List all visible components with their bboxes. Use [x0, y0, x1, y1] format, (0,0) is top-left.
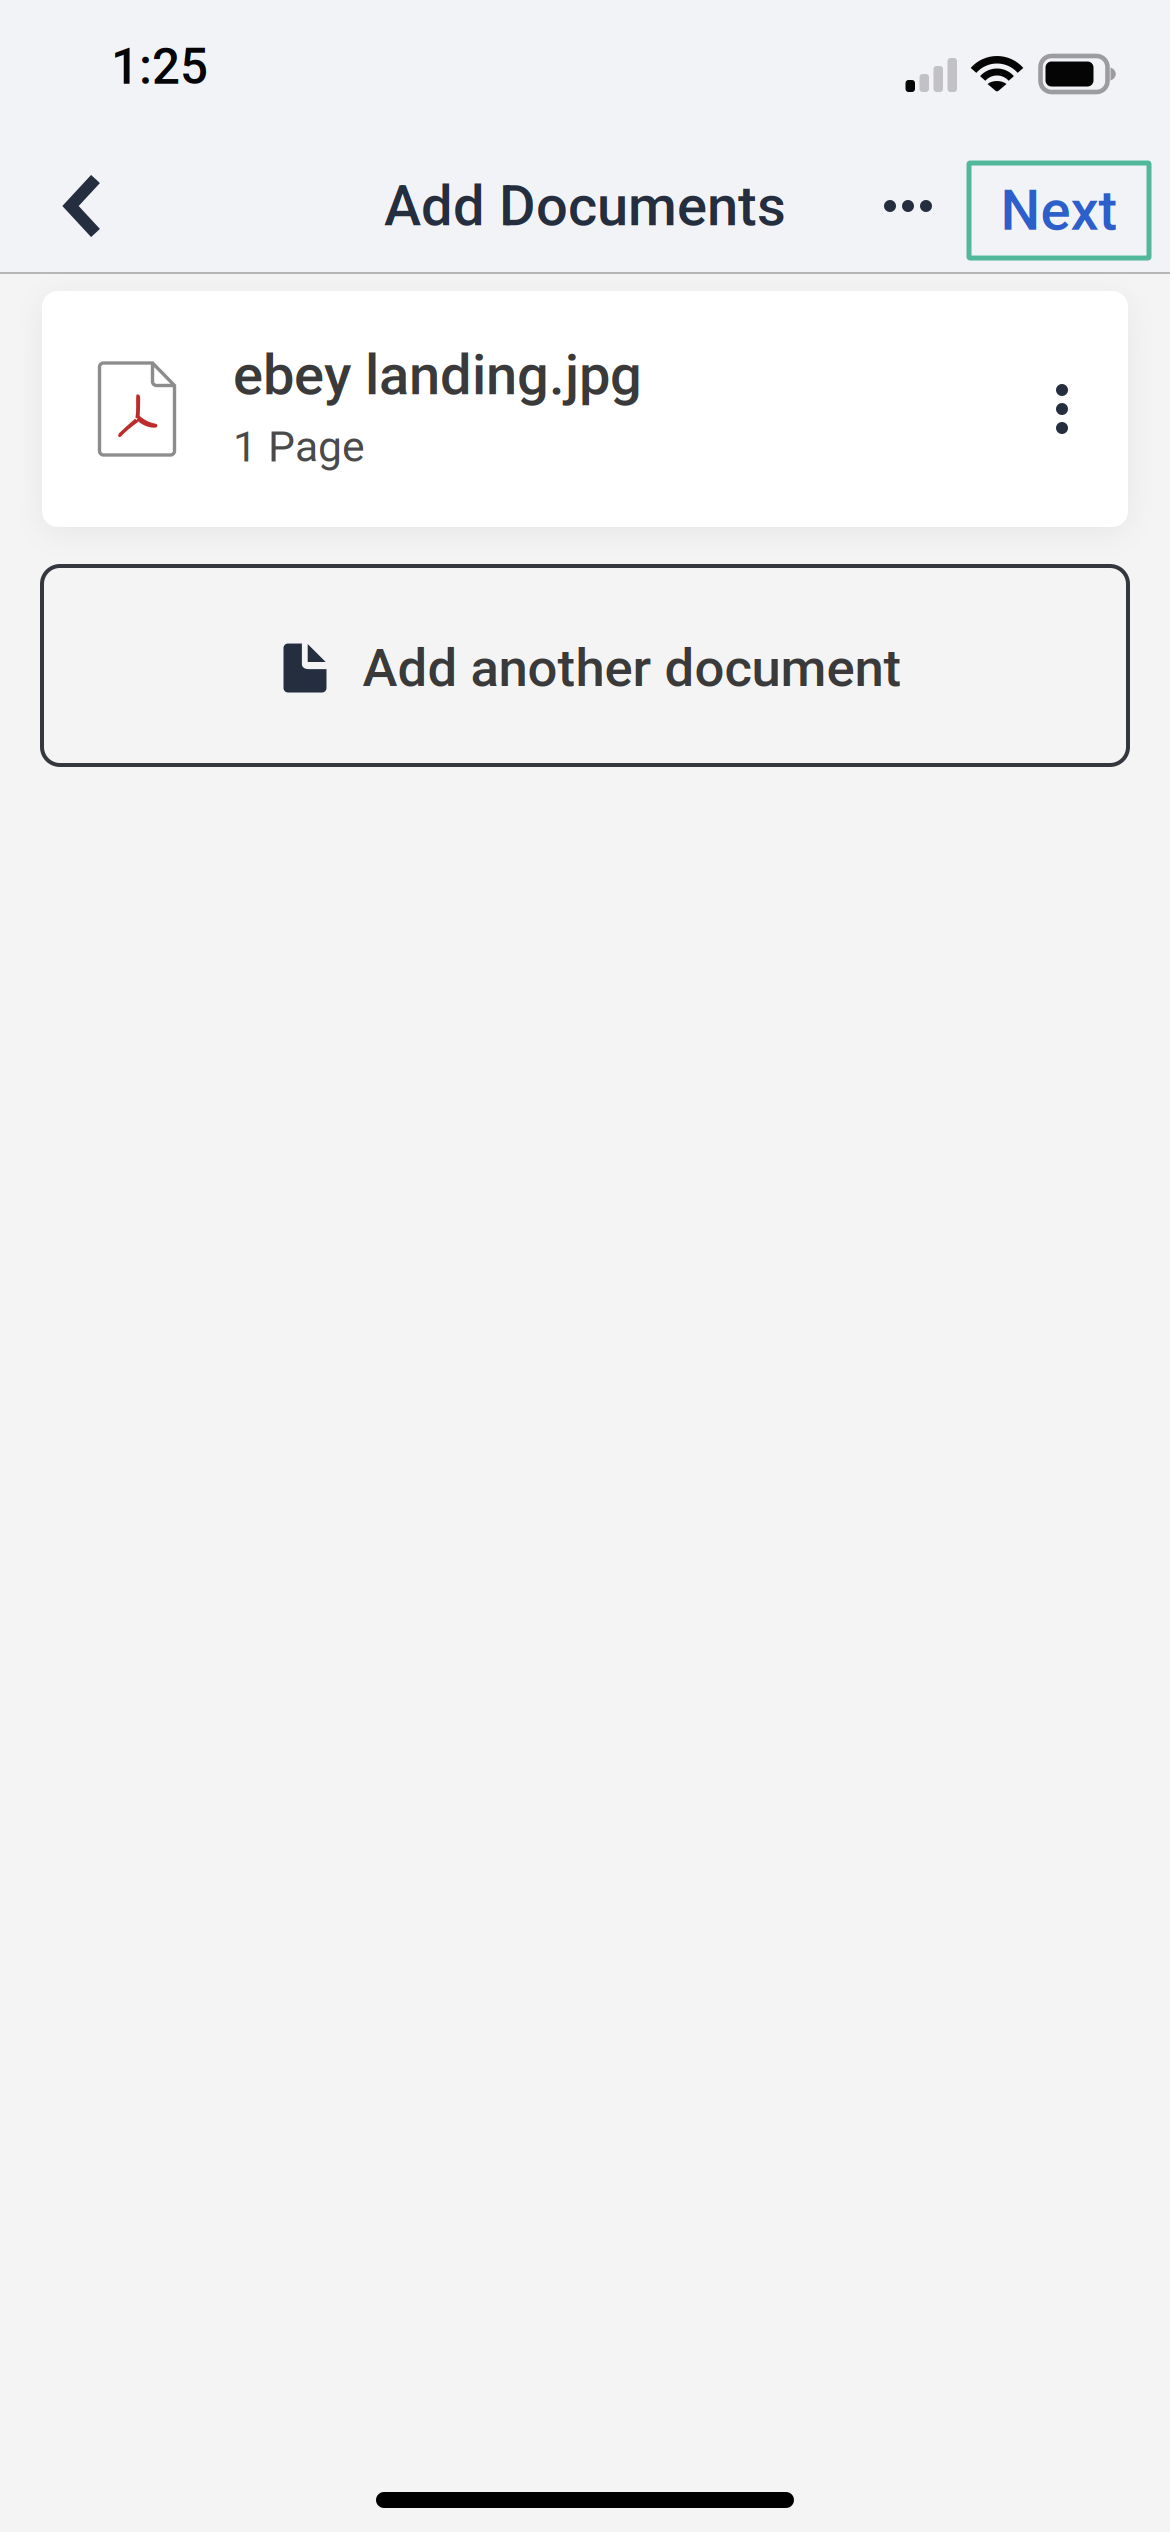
button[interactable]: ebey landing.jpg [42, 291, 1128, 527]
button[interactable]: Add another document [42, 566, 1128, 765]
staticText: 1:25 [111, 38, 208, 96]
staticText: ebey landing.jpg [233, 342, 642, 408]
button[interactable]: More options [855, 147, 961, 265]
staticText: 1 Page [233, 422, 365, 472]
staticText: Next [1000, 178, 1117, 243]
button[interactable]: Next [969, 154, 1149, 258]
button[interactable]: Back [22, 147, 144, 265]
staticText: Add another document [362, 637, 901, 699]
staticText: Add Documents [384, 173, 786, 239]
